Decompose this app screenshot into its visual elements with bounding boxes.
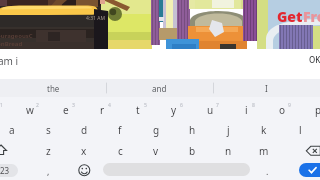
staticText: the (47, 83, 60, 94)
button[interactable]: t (120, 100, 156, 120)
button[interactable]: m (246, 141, 282, 161)
staticText: x (81, 144, 87, 158)
staticText: am i (0, 54, 19, 68)
button[interactable]: z (30, 141, 66, 161)
button[interactable]: q (0, 100, 12, 120)
button[interactable]: e (48, 100, 84, 120)
button[interactable]: i (228, 100, 264, 120)
button[interactable]: and (106, 79, 213, 97)
staticText: j (227, 123, 230, 137)
button[interactable]: y (156, 100, 192, 120)
staticText: i (245, 103, 248, 117)
button[interactable]: the (0, 79, 106, 97)
button[interactable]: h (174, 120, 210, 140)
staticText: , (47, 165, 50, 177)
staticText: u (207, 103, 214, 117)
button[interactable]: o (264, 100, 300, 120)
button[interactable]: Space (103, 163, 250, 176)
staticText: 5 (144, 102, 147, 109)
staticText: p (315, 103, 320, 117)
staticText: 9 (288, 102, 291, 109)
button[interactable]: u (192, 100, 228, 120)
staticText: f (118, 123, 122, 137)
staticText: b (189, 144, 196, 158)
staticText: ?123 (0, 165, 10, 176)
button[interactable]: r (84, 100, 120, 120)
button[interactable]: Emoji (66, 160, 102, 180)
staticText: 4:31 AM (86, 15, 105, 22)
staticText: 8 (252, 102, 255, 109)
button[interactable]: v (138, 141, 174, 161)
button[interactable]: j (210, 120, 246, 140)
staticText: Fre (303, 7, 320, 26)
staticText: d (81, 123, 88, 137)
staticText: o (279, 103, 286, 117)
staticText: h (189, 123, 196, 137)
staticText: I (265, 83, 268, 94)
button[interactable]: x (66, 141, 102, 161)
staticText: c (118, 144, 123, 158)
staticText: r (100, 103, 105, 117)
staticText: Get (277, 7, 303, 26)
button[interactable]: ?123 (0, 164, 18, 177)
button[interactable]: p (300, 100, 320, 120)
button[interactable]: w (12, 100, 48, 120)
staticText: 2 (36, 102, 39, 109)
button[interactable]: k (246, 120, 282, 140)
staticText: 1 (0, 102, 3, 109)
staticText: n (225, 144, 232, 158)
button[interactable]: g (138, 120, 174, 140)
button[interactable]: I (213, 79, 320, 97)
button[interactable]: n (210, 141, 246, 161)
staticText: y (171, 103, 177, 117)
staticText: l (299, 123, 302, 137)
staticText: ourageousC (0, 32, 33, 40)
staticText: and (152, 83, 167, 94)
button[interactable]: c (102, 141, 138, 161)
staticText: z (46, 144, 51, 158)
staticText: e (63, 103, 69, 117)
staticText: 3 (72, 102, 75, 109)
staticText: 6 (180, 102, 183, 109)
staticText: s (46, 123, 51, 137)
staticText: 4 (108, 102, 111, 109)
button[interactable]: Enter (299, 163, 320, 177)
button[interactable]: OK (309, 54, 320, 65)
staticText: . (266, 165, 269, 177)
staticText: 7 (216, 102, 219, 109)
staticText: onBread (0, 40, 23, 48)
button[interactable]: l (282, 120, 318, 140)
button[interactable]: a (0, 120, 30, 140)
staticText: OK (309, 54, 320, 65)
staticText: k (261, 123, 267, 137)
button[interactable]: Backspace (293, 140, 320, 160)
button[interactable]: b (174, 141, 210, 161)
button[interactable]: Shift (0, 140, 21, 160)
staticText: m (259, 144, 269, 158)
staticText: a (9, 123, 15, 137)
button[interactable]: . (249, 161, 285, 180)
staticText: g (153, 123, 160, 137)
staticText: t (136, 103, 140, 117)
button[interactable]: f (102, 120, 138, 140)
staticText: v (153, 144, 159, 158)
button[interactable]: s (30, 120, 66, 140)
button[interactable]: , (30, 161, 66, 180)
button[interactable]: d (66, 120, 102, 140)
staticText: w (26, 103, 34, 117)
